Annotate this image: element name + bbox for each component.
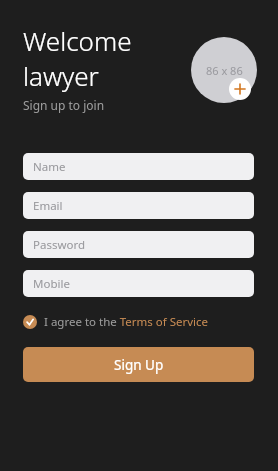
staticText: Sign up to join [23, 97, 105, 113]
staticText: lawyer [23, 58, 99, 93]
button[interactable]: I agree to the Terms of Service [23, 312, 209, 332]
staticText: Password [33, 237, 86, 253]
button[interactable]: Sign Up [23, 347, 254, 382]
staticText: Name [33, 159, 66, 175]
button[interactable]: Email [23, 192, 254, 219]
button[interactable]: Add profile photo [191, 37, 257, 103]
staticText: Sign Up [114, 356, 164, 374]
staticText: Mobile [33, 276, 70, 292]
button[interactable]: Mobile [23, 270, 254, 297]
button[interactable]: Name [23, 153, 254, 180]
staticText: 86 x 86 [206, 63, 243, 78]
button[interactable]: Password [23, 231, 254, 258]
staticText: I agree to the Terms of Service [44, 314, 209, 330]
staticText: Welcome [23, 23, 132, 58]
staticText: Email [33, 198, 63, 214]
